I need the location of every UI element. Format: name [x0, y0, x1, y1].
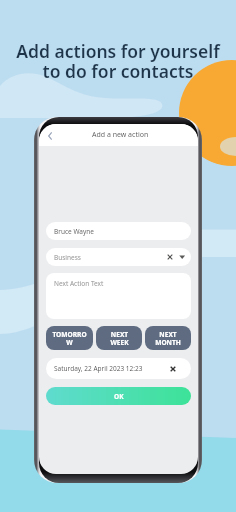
- button[interactable]: NEXT MONTH: [145, 326, 191, 350]
- button[interactable]: Business: [46, 248, 191, 266]
- button[interactable]: NEXT WEEK: [96, 326, 142, 350]
- staticText: Next Action Text: [54, 279, 104, 288]
- staticText: Add a new action: [92, 130, 149, 140]
- staticText: Saturday, 22 April 2023 12:23: [54, 364, 143, 373]
- button[interactable]: OK: [46, 387, 191, 405]
- staticText: NEXT WEEK: [110, 330, 129, 347]
- button[interactable]: Next Action Text: [46, 273, 191, 319]
- button[interactable]: TOMORRO W: [46, 326, 93, 350]
- staticText: TOMORRO W: [52, 330, 87, 347]
- staticText: Add actions for yourself to do for conta…: [9, 39, 227, 83]
- staticText: Business: [54, 253, 81, 262]
- button[interactable]: Bruce Wayne: [46, 222, 191, 240]
- button[interactable]: Saturday, 22 April 2023 12:23: [46, 358, 191, 379]
- staticText: OK: [114, 392, 124, 401]
- staticText: Bruce Wayne: [54, 227, 94, 236]
- button[interactable]: Back: [42, 128, 57, 143]
- staticText: NEXT MONTH: [155, 330, 181, 347]
